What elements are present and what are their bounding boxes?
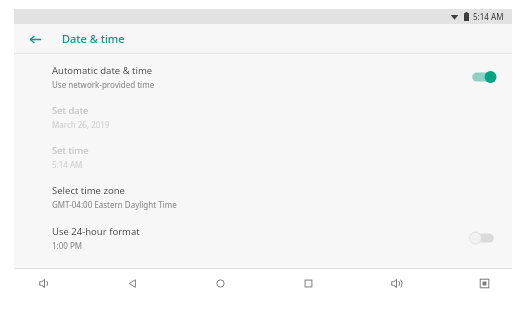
button[interactable]: Back [22, 26, 48, 52]
button[interactable]: Set time [14, 132, 512, 172]
staticText: Set date [52, 104, 89, 117]
staticText: 5:14 AM [52, 159, 83, 170]
button[interactable]: Toggle off [468, 229, 498, 247]
staticText: 1:00 PM [52, 240, 83, 251]
button[interactable]: Set date [14, 92, 512, 132]
staticText: Set time [52, 144, 89, 157]
staticText: GMT-04:00 Eastern Daylight Time [52, 199, 177, 210]
staticText: Select time zone [52, 184, 125, 197]
staticText: Date & time [62, 31, 125, 46]
button[interactable]: Select time zone [14, 172, 512, 212]
button[interactable]: Toggle on [468, 68, 498, 86]
button[interactable]: Home [176, 270, 264, 296]
button[interactable]: Back [88, 270, 176, 296]
staticText: Automatic date & time [52, 64, 153, 77]
button[interactable]: Automatic date & time [14, 54, 512, 92]
staticText: 5:14 AM [473, 11, 504, 22]
button[interactable]: Use 24-hour format [14, 212, 512, 253]
staticText: March 26, 2019 [52, 119, 110, 130]
button[interactable]: Recent apps [264, 270, 352, 296]
button[interactable]: Screenshot [440, 270, 528, 296]
button[interactable]: Volume down [0, 270, 88, 296]
staticText: Use 24-hour format [52, 225, 140, 238]
button[interactable]: Volume up [352, 270, 440, 296]
staticText: Use network-provided time [52, 79, 155, 90]
